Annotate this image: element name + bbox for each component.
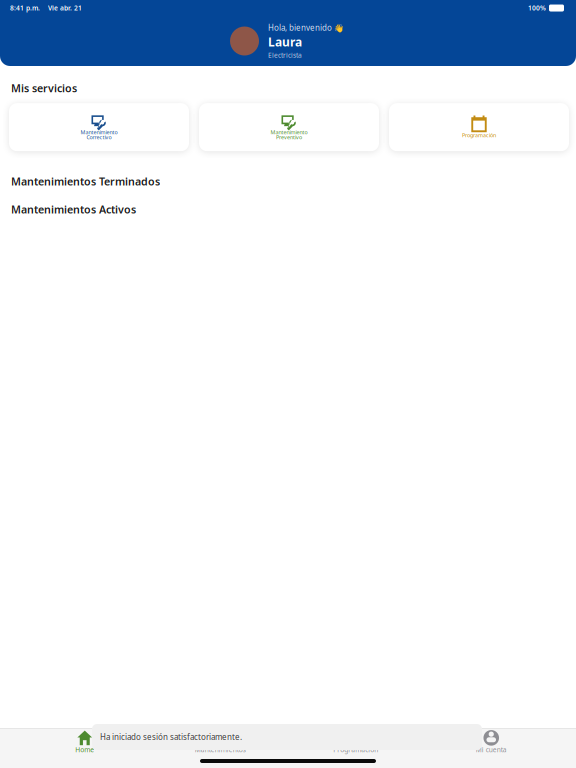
staticText: Electricista <box>268 51 302 60</box>
staticText: Mantenimientos <box>195 745 246 754</box>
staticText: Mis servicios <box>11 81 77 95</box>
button[interactable]: Home <box>17 729 152 756</box>
staticText: Vie abr. 21 <box>48 4 82 12</box>
staticText: Programacion <box>333 745 378 754</box>
button[interactable]: Mantenimientos <box>152 729 288 756</box>
staticText: Mi cuenta <box>476 745 507 754</box>
staticText: Mantenimiento <box>270 128 307 136</box>
staticText: Preventivo <box>276 134 302 141</box>
button[interactable]: Mantenimiento <box>199 103 379 151</box>
staticText: Programación <box>462 132 496 139</box>
staticText: Hola, bienvenido 👋 <box>268 22 344 33</box>
staticText: 100% <box>528 4 546 12</box>
staticText: Laura <box>268 34 302 50</box>
button[interactable]: Programacion <box>288 729 423 756</box>
button[interactable]: Mantenimiento <box>9 103 189 151</box>
staticText: 8:41 p.m. <box>10 4 40 12</box>
staticText: Mantenimiento <box>80 128 117 136</box>
button[interactable]: Programación <box>389 103 569 151</box>
button[interactable]: Mi cuenta <box>423 729 559 756</box>
staticText: Mantenimientos Terminados <box>11 174 160 188</box>
staticText: Correctivo <box>86 134 111 141</box>
staticText: Home <box>75 745 94 754</box>
staticText: Mantenimientos Activos <box>11 202 136 216</box>
staticText: Ha iniciado sesión satisfactoriamente. <box>100 732 242 742</box>
